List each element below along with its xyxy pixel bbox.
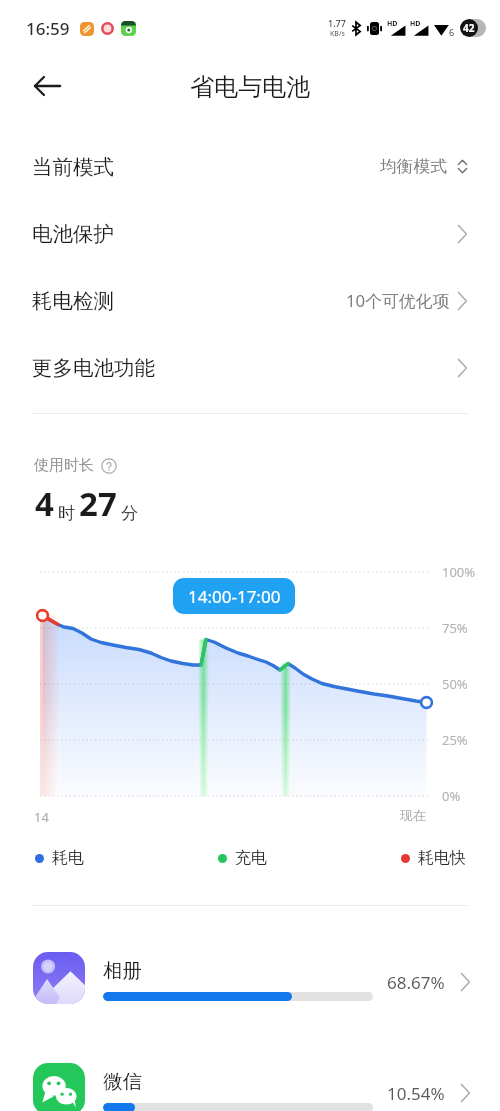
button[interactable]: Back bbox=[24, 63, 70, 109]
staticText: 耗电检测 bbox=[32, 288, 114, 314]
button[interactable]: 更多电池功能 bbox=[0, 334, 500, 401]
staticText: KB/s bbox=[330, 29, 345, 39]
staticText: 10个可优化项 bbox=[346, 289, 450, 312]
staticText: 14 bbox=[34, 808, 49, 826]
staticText: 耗电快 bbox=[418, 848, 466, 868]
staticText: 50% bbox=[442, 675, 468, 693]
staticText: HD bbox=[387, 19, 398, 29]
staticText: 均衡模式 bbox=[380, 156, 448, 177]
staticText: 相册 bbox=[103, 958, 142, 983]
button[interactable]: 电池保护 bbox=[0, 200, 500, 267]
staticText: 10.54% bbox=[387, 1082, 445, 1105]
staticText: HD bbox=[410, 19, 421, 29]
staticText: 0% bbox=[442, 787, 461, 805]
staticText: 耗电 bbox=[52, 848, 84, 868]
staticText: 现在 bbox=[400, 807, 426, 823]
staticText: 14:00-17:00 bbox=[188, 585, 281, 608]
staticText: 当前模式 bbox=[32, 154, 114, 180]
staticText: 分 bbox=[121, 503, 138, 524]
staticText: 更多电池功能 bbox=[32, 355, 155, 381]
staticText: 使用时长 bbox=[34, 456, 94, 475]
button[interactable]: 微信 bbox=[0, 1039, 500, 1111]
staticText: 电池保护 bbox=[32, 221, 114, 247]
staticText: 1.77 bbox=[328, 17, 346, 29]
staticText: 16:59 bbox=[26, 17, 70, 40]
staticText: 省电与电池 bbox=[190, 72, 310, 102]
button[interactable]: 当前模式 bbox=[0, 133, 500, 200]
staticText: 时 bbox=[58, 503, 75, 524]
button[interactable]: 相册 bbox=[0, 928, 500, 1028]
staticText: 27 bbox=[79, 481, 117, 526]
staticText: 100% bbox=[442, 563, 476, 581]
staticText: 充电 bbox=[235, 848, 267, 868]
staticText: 42 bbox=[463, 21, 475, 35]
staticText: 75% bbox=[442, 619, 468, 637]
staticText: 微信 bbox=[103, 1069, 142, 1094]
staticText: 6 bbox=[449, 26, 455, 38]
staticText: 25% bbox=[442, 731, 468, 749]
staticText: 4 bbox=[35, 481, 54, 526]
staticText: 68.67% bbox=[387, 971, 445, 994]
button[interactable]: 耗电检测 bbox=[0, 267, 500, 334]
